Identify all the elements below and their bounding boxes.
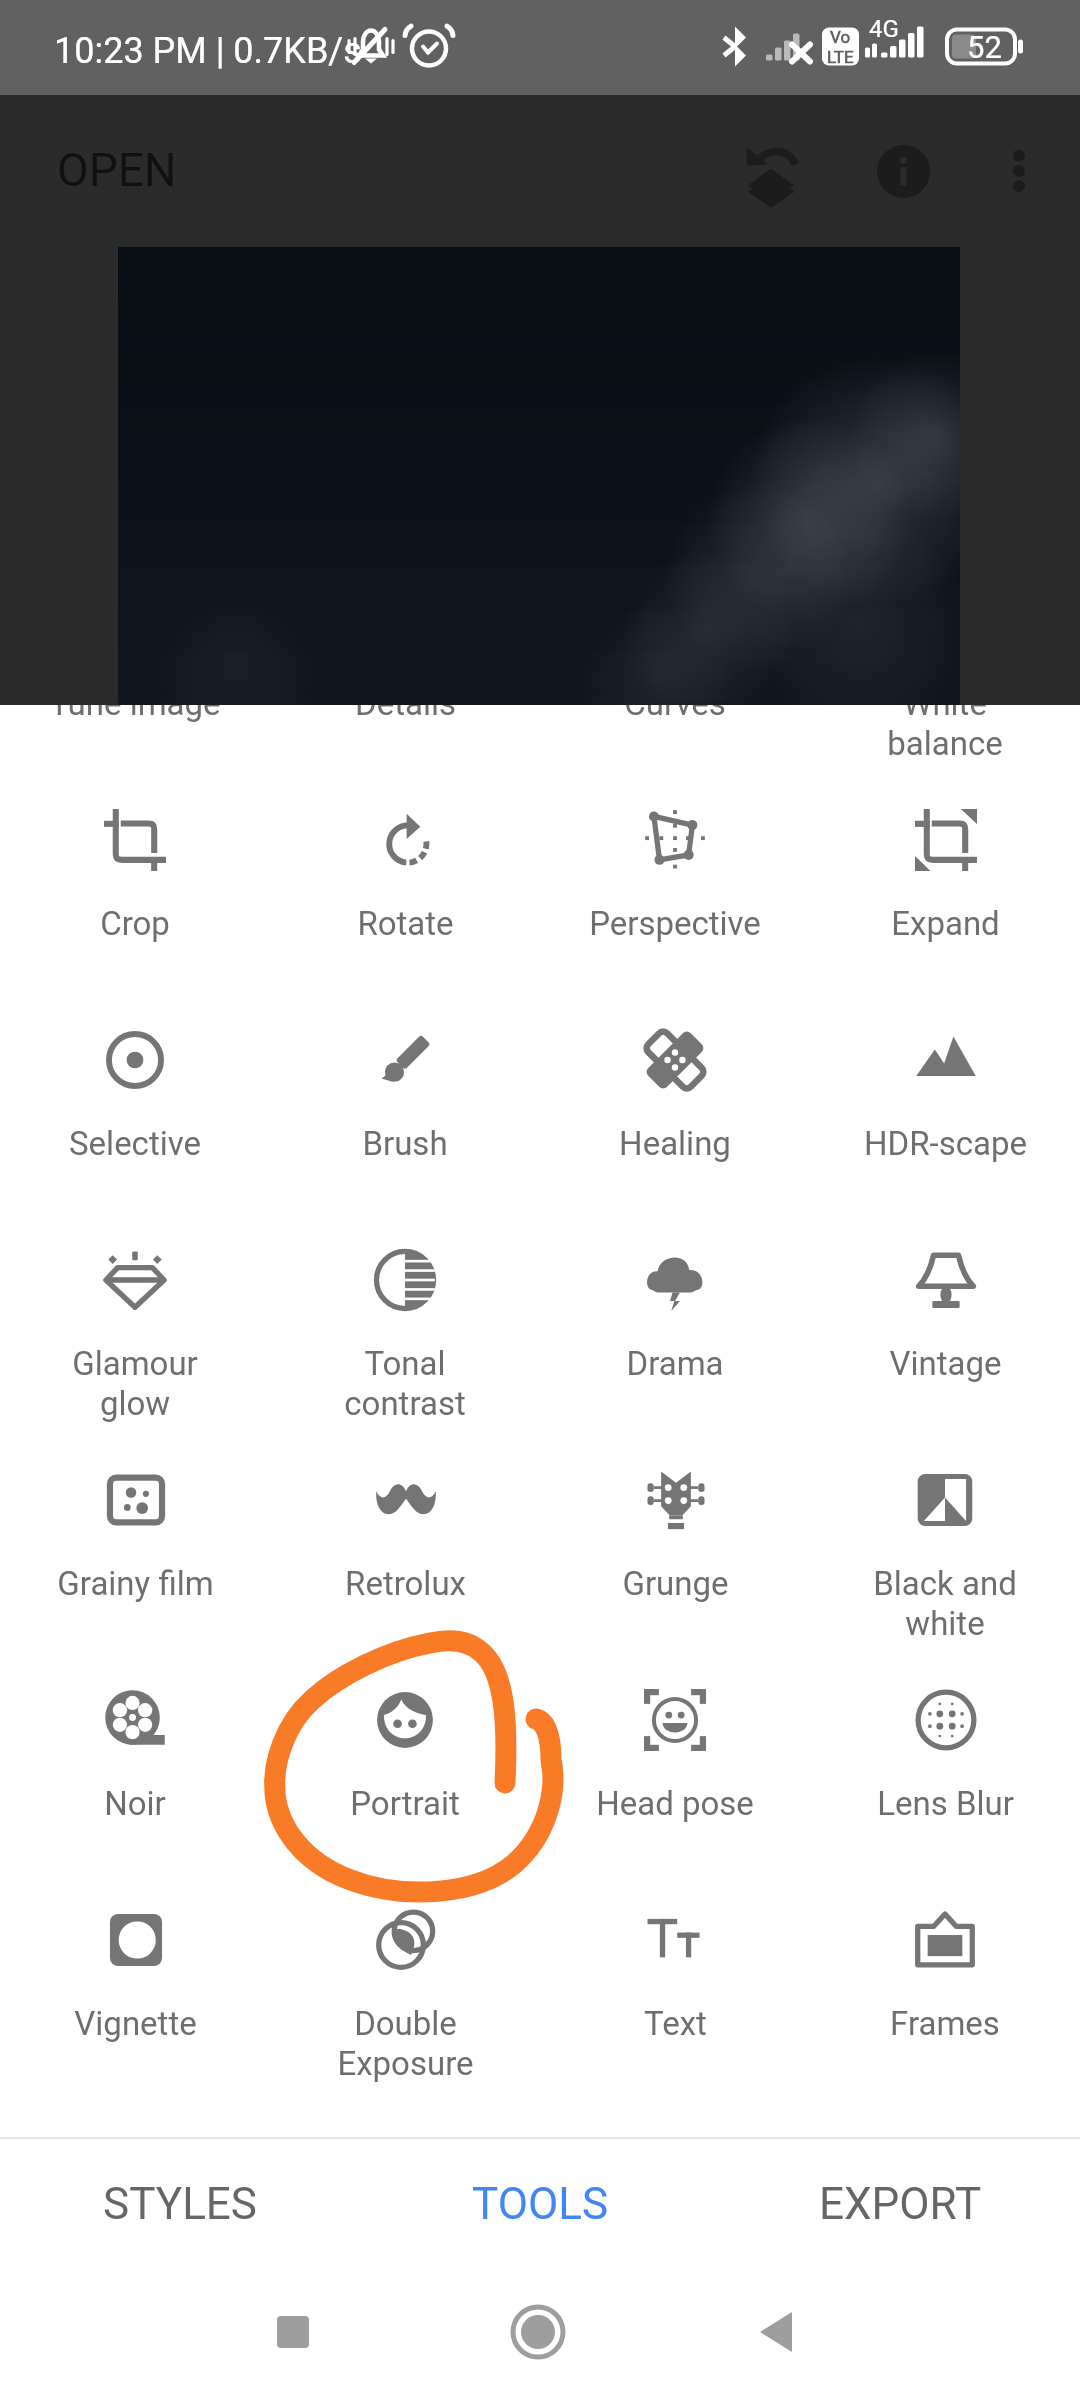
staticText: Tune image bbox=[49, 705, 221, 723]
button[interactable]: Grainy film bbox=[0, 1469, 270, 1659]
staticText: Drama bbox=[626, 1344, 724, 1383]
staticText: TOOLS bbox=[472, 2178, 609, 2230]
button[interactable]: Tonal contrast bbox=[270, 1249, 540, 1439]
staticText: Text bbox=[644, 2004, 707, 2043]
staticText: Head pose bbox=[596, 1784, 754, 1823]
button[interactable]: Rotate bbox=[270, 809, 540, 999]
button[interactable]: Frames bbox=[810, 1909, 1080, 2099]
staticText: Lens Blur bbox=[877, 1784, 1014, 1823]
button[interactable]: Retrolux bbox=[270, 1469, 540, 1659]
staticText: Portrait bbox=[350, 1784, 460, 1823]
button[interactable]: Curves bbox=[540, 705, 810, 779]
staticText: STYLES bbox=[103, 2178, 257, 2230]
button[interactable]: Text bbox=[540, 1909, 810, 2099]
button[interactable]: Double Exposure bbox=[270, 1909, 540, 2099]
staticText: Brush bbox=[362, 1124, 448, 1163]
button[interactable]: Info bbox=[843, 111, 963, 231]
button[interactable]: Vignette bbox=[0, 1909, 270, 2099]
staticText: Curves bbox=[624, 705, 726, 723]
button[interactable]: Black and white bbox=[810, 1469, 1080, 1659]
staticText: Vo bbox=[830, 27, 851, 47]
button[interactable]: Perspective bbox=[540, 809, 810, 999]
staticText: Frames bbox=[890, 2004, 1000, 2043]
staticText: Black and white bbox=[873, 1564, 1017, 1644]
staticText: White balance bbox=[887, 705, 1003, 764]
staticText: Perspective bbox=[589, 904, 761, 943]
button[interactable]: Lens Blur bbox=[810, 1689, 1080, 1879]
button[interactable]: OPEN bbox=[25, 121, 209, 219]
button[interactable]: Drama bbox=[540, 1249, 810, 1439]
staticText: Rotate bbox=[357, 904, 454, 943]
button[interactable]: EXPORT bbox=[720, 2139, 1080, 2269]
staticText: Grainy film bbox=[57, 1564, 214, 1603]
staticText: Glamour glow bbox=[72, 1344, 198, 1424]
staticText: Vintage bbox=[889, 1344, 1002, 1383]
staticText: Details bbox=[355, 705, 456, 723]
button[interactable]: Healing bbox=[540, 1029, 810, 1219]
staticText: LTE bbox=[827, 47, 854, 67]
staticText: Tonal contrast bbox=[344, 1344, 466, 1424]
button[interactable]: Grunge bbox=[540, 1469, 810, 1659]
staticText: Selective bbox=[69, 1124, 201, 1163]
button[interactable]: Selective bbox=[0, 1029, 270, 1219]
staticText: Expand bbox=[891, 904, 1000, 943]
button[interactable]: HDR-scape bbox=[810, 1029, 1080, 1219]
staticText: HDR-scape bbox=[864, 1124, 1027, 1163]
staticText: EXPORT bbox=[819, 2178, 982, 2230]
button[interactable]: Noir bbox=[0, 1689, 270, 1879]
button[interactable]: Vintage bbox=[810, 1249, 1080, 1439]
staticText: Vignette bbox=[74, 2004, 197, 2043]
button[interactable]: Brush bbox=[270, 1029, 540, 1219]
button[interactable]: TOOLS bbox=[360, 2139, 720, 2269]
staticText: 4G bbox=[869, 15, 899, 43]
button[interactable]: Details bbox=[270, 705, 540, 779]
button[interactable]: White balance bbox=[810, 705, 1080, 779]
staticText: Grunge bbox=[622, 1564, 729, 1603]
staticText: Double Exposure bbox=[337, 2004, 474, 2084]
staticText: OPEN bbox=[57, 143, 177, 197]
staticText: Healing bbox=[619, 1124, 731, 1163]
staticText: Noir bbox=[104, 1784, 166, 1823]
button[interactable]: Revert bbox=[711, 111, 831, 231]
button[interactable]: Head pose bbox=[540, 1689, 810, 1879]
staticText: 52 bbox=[967, 29, 1002, 65]
staticText: 10:23 PM | 0.7KB/s bbox=[54, 30, 362, 72]
button[interactable]: STYLES bbox=[0, 2139, 360, 2269]
staticText: Crop bbox=[100, 904, 170, 943]
staticText: Retrolux bbox=[345, 1564, 466, 1603]
button[interactable]: Tune image bbox=[0, 705, 270, 779]
button[interactable]: Crop bbox=[0, 809, 270, 999]
button[interactable]: Portrait bbox=[270, 1689, 540, 1879]
button[interactable]: Expand bbox=[810, 809, 1080, 999]
button[interactable]: Glamour glow bbox=[0, 1249, 270, 1439]
